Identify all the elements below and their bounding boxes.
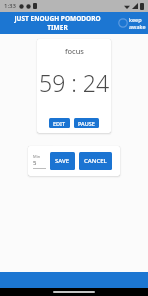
staticText: PAUSE bbox=[78, 120, 95, 127]
button[interactable]: keep bbox=[118, 16, 148, 30]
staticText: keep bbox=[129, 16, 142, 23]
staticText: JUST ENOUGH POMODORO bbox=[14, 14, 101, 23]
staticText: Min bbox=[33, 154, 41, 159]
staticText: EDIT bbox=[53, 120, 66, 127]
other: Home bbox=[53, 291, 95, 293]
staticText: 5 bbox=[33, 159, 37, 167]
staticText: SAVE bbox=[55, 157, 70, 165]
button[interactable]: EDIT bbox=[49, 118, 70, 128]
staticText: focus bbox=[65, 46, 84, 56]
staticText: awake bbox=[129, 23, 146, 30]
button[interactable]: Min bbox=[33, 154, 46, 169]
button[interactable]: SAVE bbox=[50, 152, 75, 170]
staticText: CANCEL bbox=[84, 157, 107, 165]
staticText: 1:33 bbox=[4, 2, 16, 10]
staticText: TIMER bbox=[47, 23, 68, 32]
button[interactable]: PAUSE bbox=[74, 118, 99, 128]
staticText: 59 : 24 bbox=[39, 67, 110, 98]
button[interactable]: CANCEL bbox=[79, 152, 112, 170]
